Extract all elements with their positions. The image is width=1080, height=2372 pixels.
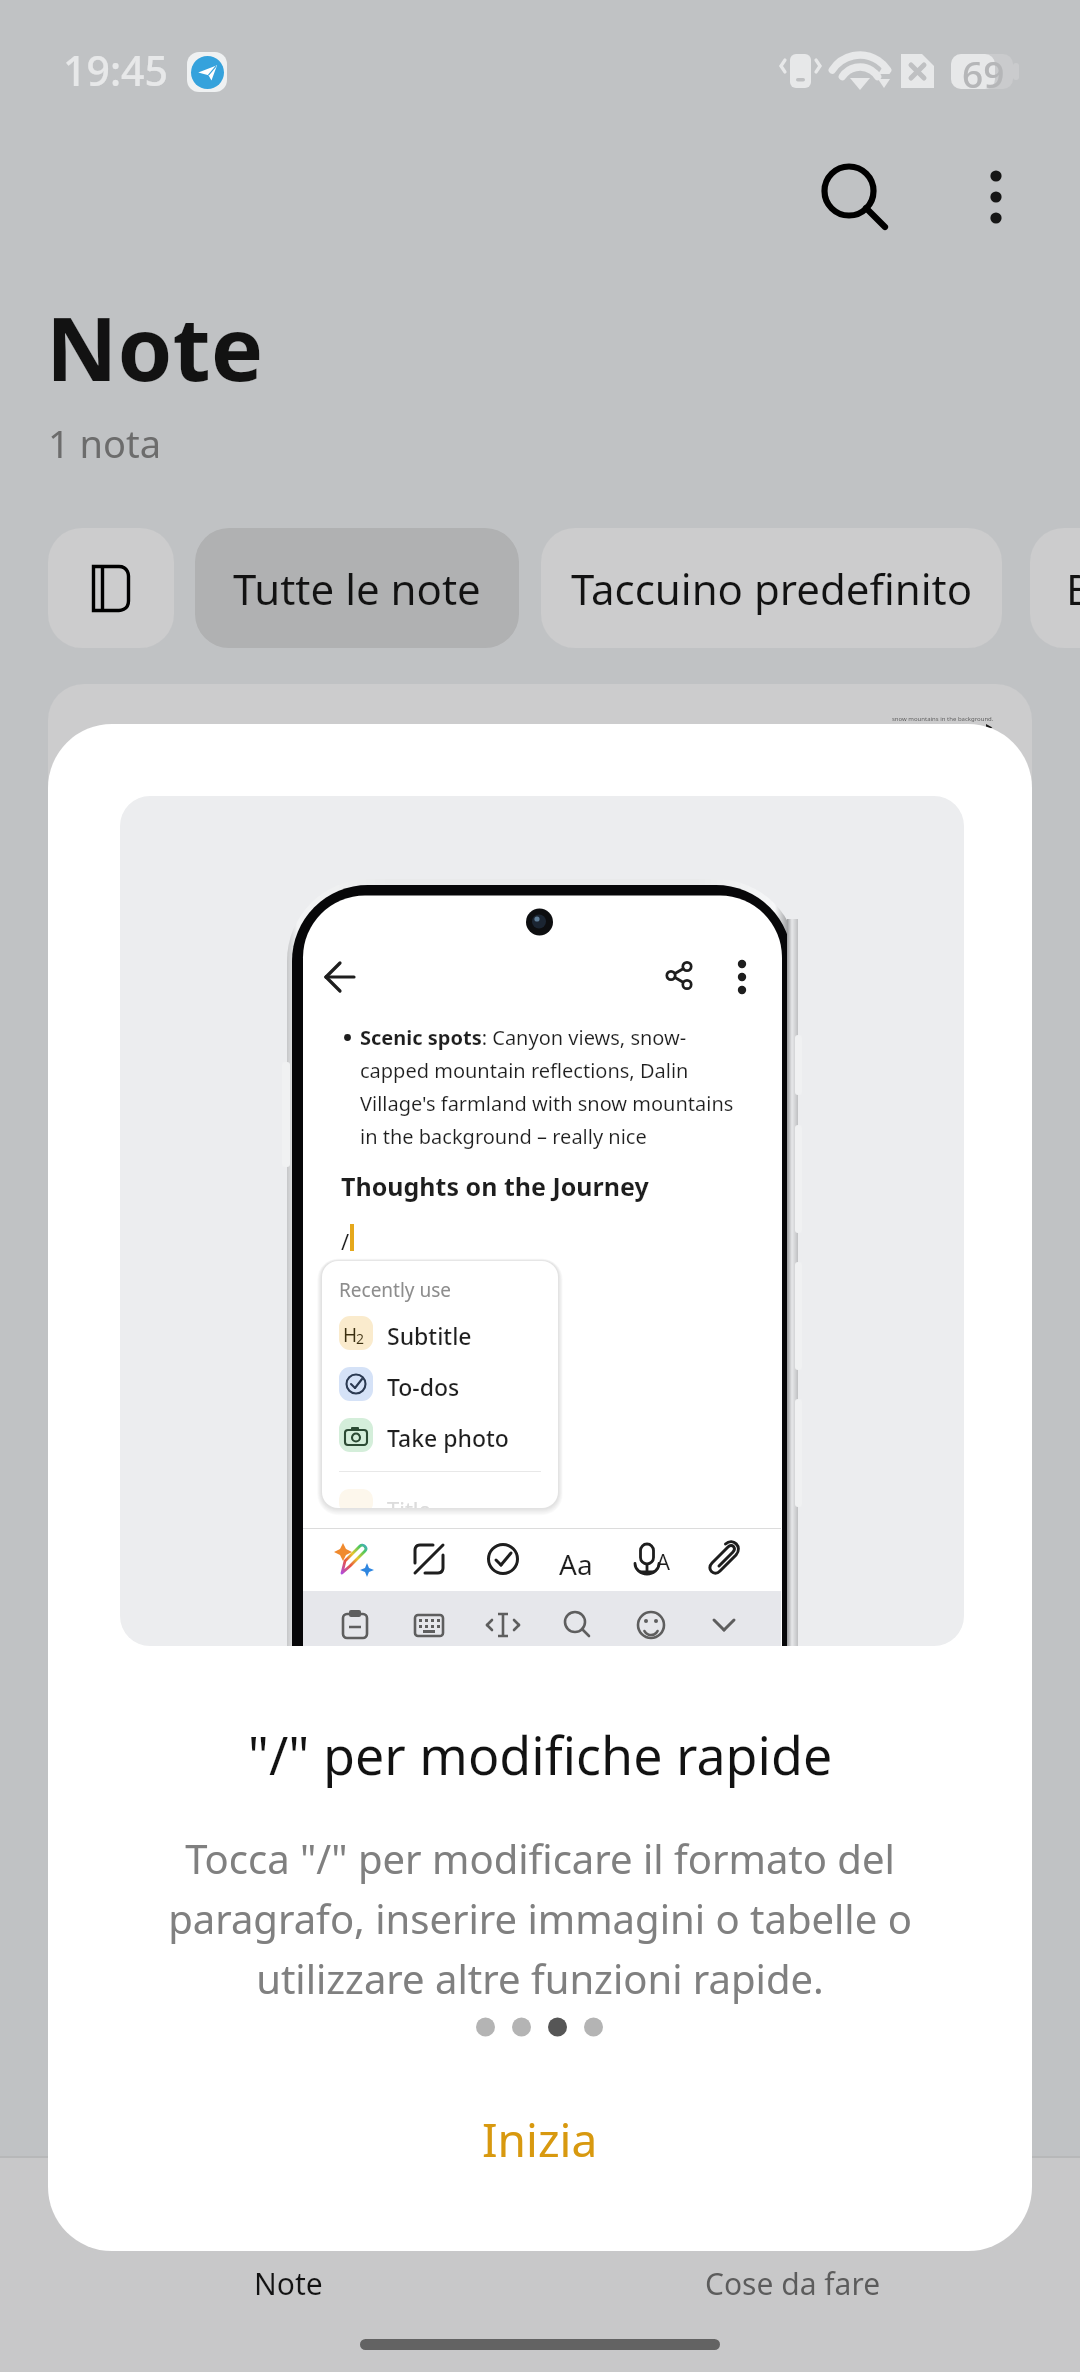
staticText: "/" per modifiche rapide	[48, 1719, 1032, 1790]
button[interactable]: Note	[168, 2243, 409, 2323]
staticText: Aa	[559, 1545, 593, 1583]
staticText: 19:45	[63, 42, 168, 98]
button[interactable]: Bozze	[1030, 528, 1080, 648]
button[interactable]: Search	[799, 141, 909, 251]
staticText: Note	[46, 287, 264, 407]
button[interactable]: Inizia	[48, 2108, 1032, 2218]
button[interactable]: Cose da fare	[672, 2243, 913, 2323]
button[interactable]: More options	[941, 145, 1051, 255]
staticText: snow mountains in the background.	[892, 715, 994, 723]
staticText: Thoughts on the Journey	[341, 1169, 649, 1203]
staticText: H	[343, 1322, 358, 1348]
staticText: 69	[962, 48, 1005, 98]
staticText: Take photo	[387, 1422, 509, 1453]
staticText: Tutte le note	[233, 560, 481, 617]
staticText: Cose da fare	[705, 2263, 881, 2304]
staticText: 1 nota	[48, 417, 162, 469]
staticText: Inizia	[482, 2108, 598, 2171]
staticText: Taccuino predefinito	[571, 560, 973, 617]
staticText: A	[656, 1546, 671, 1576]
staticText: Tocca "/" per modificare il formato del …	[48, 1831, 1032, 2006]
staticText: /	[341, 1226, 350, 1256]
staticText: Title	[387, 1494, 431, 1508]
staticText: To-dos	[387, 1371, 460, 1402]
button[interactable]: Notebooks	[48, 528, 174, 648]
button[interactable]: Tutte le note	[195, 528, 519, 648]
staticText: Subtitle	[387, 1320, 472, 1351]
staticText: Bozze	[1066, 560, 1080, 617]
button[interactable]: Taccuino predefinito	[541, 528, 1002, 648]
staticText: Scenic spots: Canyon views, snow- capped…	[360, 1024, 760, 1150]
staticText: Recently use	[339, 1277, 452, 1303]
staticText: 2	[356, 1329, 365, 1348]
staticText: Note	[254, 2263, 323, 2304]
